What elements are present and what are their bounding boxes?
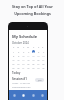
button[interactable]: 23 <box>16 61 21 65</box>
staticText: Consultation Call <box>12 86 31 89</box>
staticText: 22 <box>12 62 15 65</box>
staticText: 3 <box>23 50 25 53</box>
button[interactable]: 35 <box>41 65 45 69</box>
staticText: October 2024 <box>12 41 29 45</box>
staticText: S <box>42 46 44 49</box>
button[interactable]: 29 <box>11 65 16 69</box>
staticText: 2 <box>18 50 20 53</box>
staticText: 23 <box>17 62 20 65</box>
staticText: T <box>23 46 25 49</box>
staticText: My Schedule <box>12 34 38 39</box>
button[interactable]: 13 <box>36 53 41 57</box>
button[interactable]: 17 <box>21 57 26 61</box>
button[interactable]: Home <box>10 90 18 100</box>
button[interactable]: 22 <box>11 61 16 65</box>
button[interactable]: 8 <box>11 53 16 57</box>
button[interactable]: Session #1 <box>12 77 44 91</box>
button[interactable]: 34 <box>36 65 41 69</box>
button[interactable]: 3 <box>21 49 26 53</box>
staticText: 17 <box>22 58 25 61</box>
staticText: 19 <box>32 58 35 61</box>
staticText: 33 <box>32 66 35 69</box>
staticText: 29 <box>12 66 15 69</box>
staticText: 34 <box>37 66 40 69</box>
button[interactable]: 12 <box>31 53 36 57</box>
button[interactable]: 32 <box>26 65 31 69</box>
staticText: 7 <box>43 50 45 53</box>
staticText: 11 <box>27 54 30 57</box>
button[interactable]: 24 <box>21 61 26 65</box>
staticText: Session #1 <box>12 77 27 81</box>
staticText: 35 <box>42 66 45 69</box>
button[interactable]: 18 <box>26 57 31 61</box>
button[interactable]: 19 <box>31 57 36 61</box>
staticText: T <box>33 46 35 49</box>
button[interactable]: 10 <box>21 53 26 57</box>
staticText: 21 <box>42 58 45 61</box>
button[interactable]: 5 <box>31 49 36 53</box>
button[interactable]: 14 <box>41 53 45 57</box>
button[interactable]: Messages <box>29 90 37 100</box>
button[interactable]: 11 <box>26 53 31 57</box>
button[interactable]: 31 <box>21 65 26 69</box>
staticText: 12 <box>32 54 35 57</box>
staticText: 13 <box>37 54 40 57</box>
button[interactable]: 2 <box>16 49 21 53</box>
button[interactable]: Profile <box>38 90 46 100</box>
staticText: M <box>17 46 20 49</box>
staticText: 6 <box>38 50 40 53</box>
staticText: Upcoming Bookings <box>14 11 51 16</box>
button[interactable]: My Schedule <box>12 34 44 39</box>
staticText: 24 <box>22 62 25 65</box>
button[interactable]: 20 <box>36 57 41 61</box>
staticText: 32 <box>27 66 30 69</box>
staticText: S <box>13 46 15 49</box>
staticText: 20 <box>37 58 40 61</box>
button[interactable]: 33 <box>31 65 36 69</box>
button[interactable]: 28 <box>41 61 45 65</box>
staticText: 27 <box>37 62 40 65</box>
button[interactable]: 30 <box>16 65 21 69</box>
staticText: 16 <box>17 58 20 61</box>
staticText: Today <box>12 71 21 75</box>
staticText: 25 <box>27 62 30 65</box>
staticText: 30 <box>17 66 20 69</box>
staticText: 14 <box>42 54 45 57</box>
button[interactable]: 7 <box>41 49 45 53</box>
button[interactable]: 25 <box>26 61 31 65</box>
staticText: 15 <box>12 58 15 61</box>
staticText: 9 <box>18 54 20 57</box>
button[interactable]: 4 <box>26 49 31 53</box>
staticText: 26 <box>32 62 35 65</box>
button[interactable]: Calendar <box>19 90 27 100</box>
staticText: F <box>38 46 40 49</box>
button[interactable]: 16 <box>16 57 21 61</box>
staticText: 1 <box>13 50 15 53</box>
button[interactable]: Join <box>35 78 44 82</box>
button[interactable]: 9 <box>16 53 21 57</box>
staticText: 10:00 - 11:00 AM <box>12 82 30 85</box>
button[interactable]: 26 <box>31 61 36 65</box>
button[interactable]: 15 <box>11 57 16 61</box>
button[interactable]: 21 <box>41 57 45 61</box>
staticText: 4 <box>28 50 30 53</box>
staticText: W <box>27 46 30 49</box>
staticText: Stay on Top of All Your <box>12 4 53 9</box>
staticText: 18 <box>27 58 30 61</box>
staticText: 5 <box>33 50 35 53</box>
staticText: Join <box>38 79 42 82</box>
button[interactable]: 6 <box>36 49 41 53</box>
staticText: 28 <box>42 62 45 65</box>
button[interactable]: 27 <box>36 61 41 65</box>
staticText: 10 <box>22 54 25 57</box>
button[interactable]: 1 <box>11 49 16 53</box>
staticText: 31 <box>22 66 25 69</box>
staticText: 8 <box>13 54 15 57</box>
